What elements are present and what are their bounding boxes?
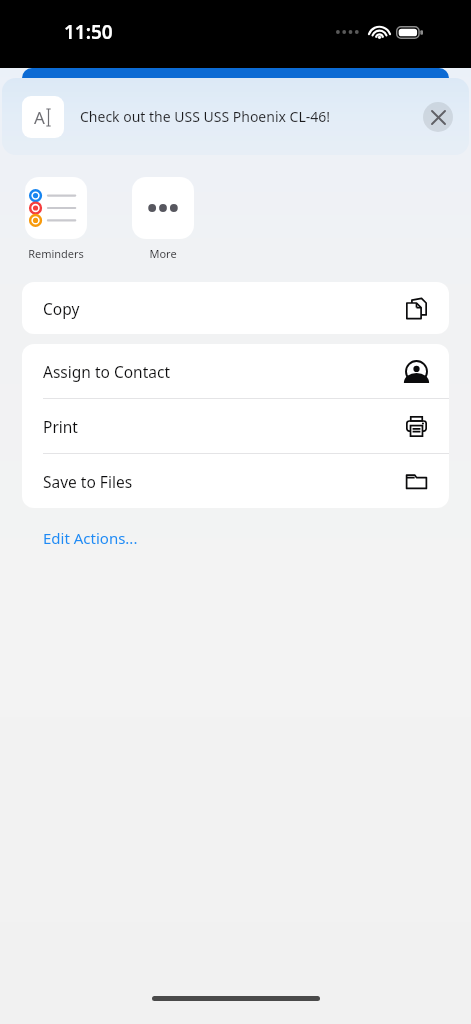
staticText: Edit Actions... — [43, 528, 138, 548]
staticText: Assign to Contact — [43, 361, 170, 382]
staticText: Reminders — [28, 246, 84, 261]
staticText: Save to Files — [43, 471, 133, 492]
button[interactable]: Assign to Contact — [22, 344, 449, 398]
staticText: Check out the USS USS Phoenix CL-46! — [80, 107, 331, 126]
button[interactable]: A — [2, 78, 469, 155]
staticText: Copy — [43, 298, 80, 319]
button[interactable]: Save to Files — [22, 454, 449, 508]
button[interactable]: Edit Actions... — [22, 522, 159, 554]
staticText: 11:50 — [64, 19, 113, 45]
staticText: A — [34, 106, 45, 129]
button[interactable]: More — [129, 177, 197, 261]
staticText: More — [149, 246, 177, 261]
button[interactable]: Print — [22, 399, 449, 453]
button[interactable]: Close — [423, 102, 453, 132]
button[interactable]: Copy — [22, 282, 449, 334]
button[interactable]: Reminders — [22, 177, 90, 261]
staticText: Print — [43, 416, 78, 437]
